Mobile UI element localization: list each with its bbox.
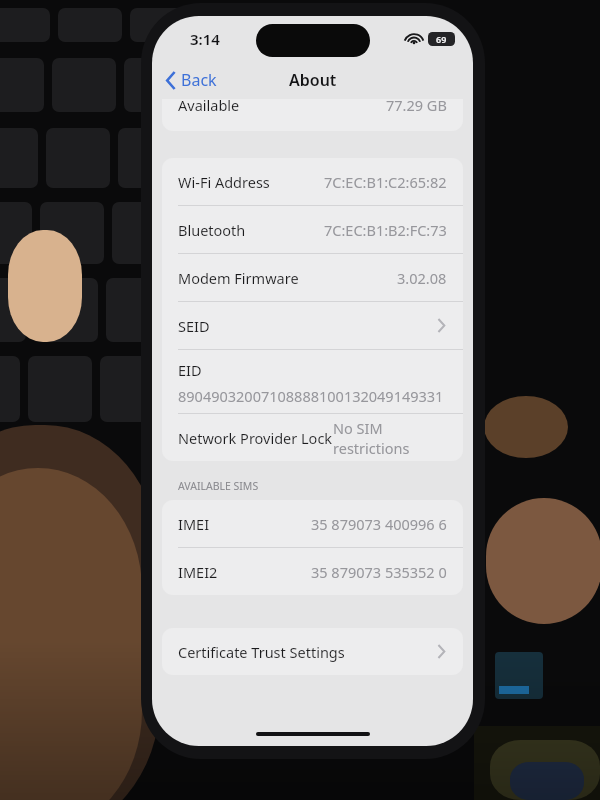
staticText: Available (178, 99, 240, 115)
staticText: No SIM restrictions (333, 418, 447, 458)
staticText: Bluetooth (178, 220, 246, 240)
button[interactable]: Available (162, 99, 463, 131)
staticText: EID (178, 360, 202, 380)
staticText: Back (181, 69, 217, 91)
staticText: 35 879073 400996 6 (311, 514, 447, 534)
button[interactable]: EID (162, 350, 463, 413)
button[interactable]: IMEI (162, 500, 463, 547)
staticText: AVAILABLE SIMS (178, 479, 259, 493)
button[interactable]: Bluetooth (162, 206, 463, 253)
button[interactable]: Back (160, 64, 223, 96)
staticText: 3:14 (190, 29, 220, 49)
other: Wi-Fi signal (406, 33, 422, 45)
button[interactable]: Certificate Trust Settings (162, 628, 463, 675)
staticText: 35 879073 535352 0 (311, 562, 447, 582)
staticText: 3.02.08 (397, 268, 447, 288)
staticText: 77.29 GB (386, 99, 447, 115)
staticText: Network Provider Lock (178, 428, 333, 448)
staticText: Modem Firmware (178, 268, 299, 288)
staticText: IMEI2 (178, 562, 218, 582)
staticText: About (289, 69, 337, 91)
staticText: 7C:EC:B1:C2:65:82 (324, 172, 447, 192)
button[interactable]: SEID (162, 302, 463, 349)
staticText: Wi-Fi Address (178, 172, 270, 192)
staticText: IMEI (178, 514, 210, 534)
staticText: 89049032007108888100132049149331 (178, 386, 444, 406)
button[interactable]: IMEI2 (162, 548, 463, 595)
staticText: SEID (178, 316, 210, 336)
button[interactable]: Modem Firmware (162, 254, 463, 301)
staticText: Certificate Trust Settings (178, 642, 345, 662)
staticText: 69 (436, 33, 447, 45)
button[interactable]: Network Provider Lock (162, 414, 463, 461)
button[interactable]: Wi-Fi Address (162, 158, 463, 205)
staticText: 7C:EC:B1:B2:FC:73 (324, 220, 447, 240)
